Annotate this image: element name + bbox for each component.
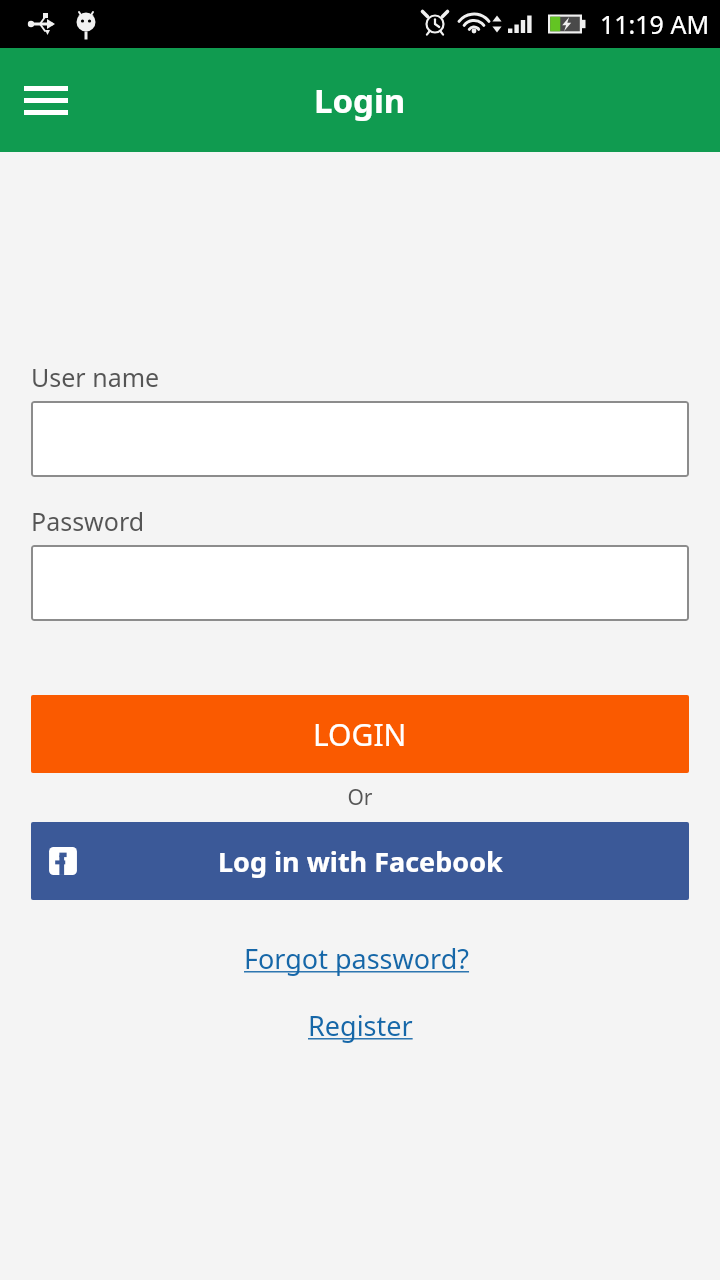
staticText: 11:19 AM (600, 7, 710, 41)
button[interactable] (31, 401, 689, 477)
staticText: Register (308, 1007, 413, 1044)
staticText: Login (314, 78, 406, 123)
button[interactable]: LOGIN (31, 695, 689, 773)
button[interactable]: Forgot password? (238, 938, 483, 979)
staticText: User name (31, 360, 160, 394)
button[interactable]: Log in with Facebook (31, 822, 689, 900)
staticText: Forgot password? (244, 940, 477, 977)
staticText: Or (31, 783, 689, 812)
staticText: Log in with Facebook (218, 843, 503, 880)
button[interactable] (31, 545, 689, 621)
staticText: LOGIN (313, 714, 407, 755)
button[interactable]: Register (302, 1005, 419, 1046)
staticText: Password (31, 504, 145, 538)
button[interactable]: Open navigation menu (10, 64, 82, 136)
